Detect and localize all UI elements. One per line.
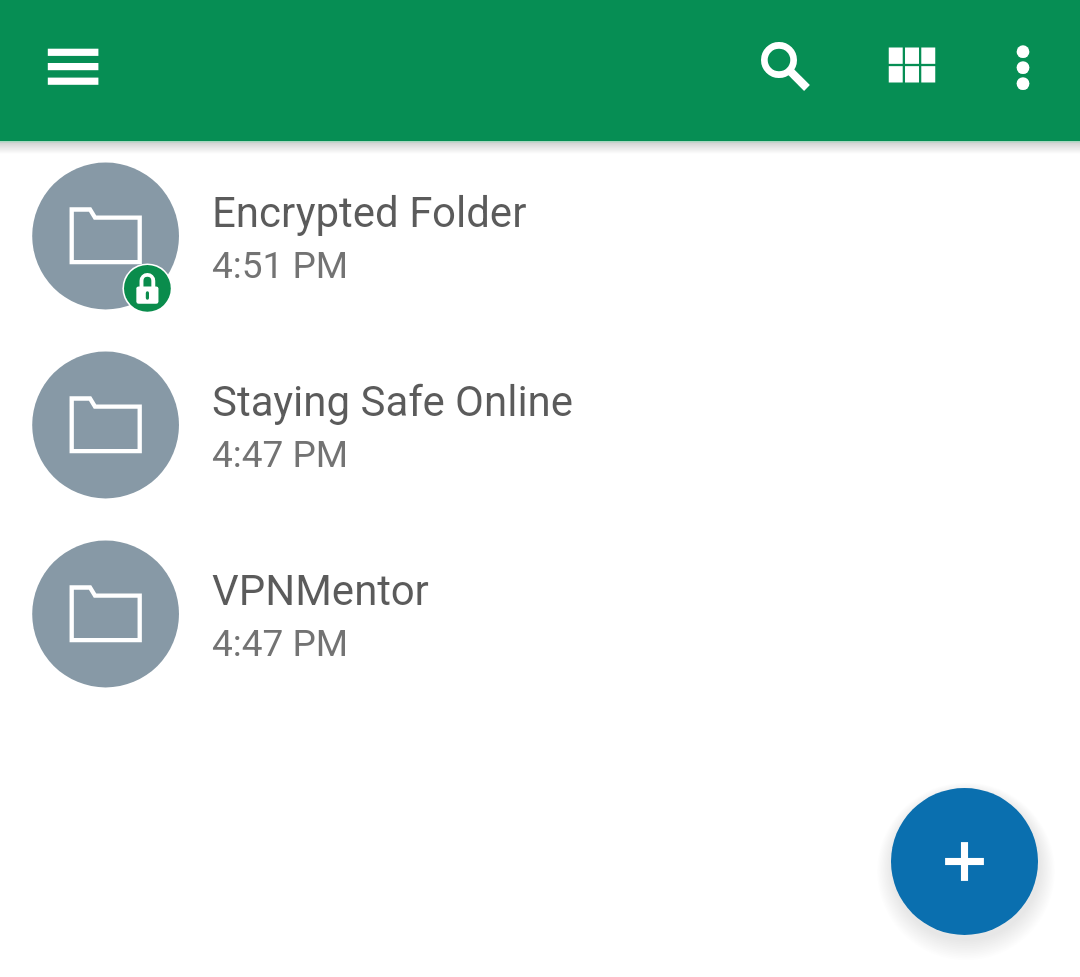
button[interactable]: Add new folder [891,788,1038,935]
staticText: 4:51 PM [212,244,349,287]
staticText: Staying Safe Online [212,377,574,426]
button[interactable]: Encrypted Folder [0,142,1080,330]
staticText: VPNMentor [212,566,429,615]
staticText: 4:47 PM [212,433,349,476]
staticText: Encrypted Folder [212,188,527,237]
button[interactable]: VPNMentor [0,520,1080,708]
button[interactable]: More options [983,27,1063,107]
button[interactable]: Search [739,20,819,120]
staticText: 4:47 PM [212,622,349,665]
button[interactable]: Staying Safe Online [0,331,1080,519]
button[interactable]: Switch to grid view [872,25,952,105]
button[interactable]: Open navigation drawer [24,22,122,112]
